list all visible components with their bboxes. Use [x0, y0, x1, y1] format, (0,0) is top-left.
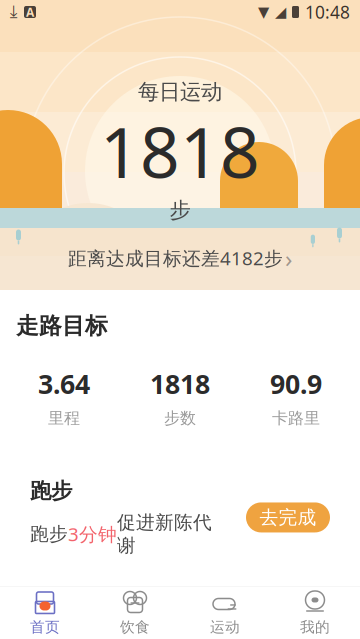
staticText: 90.9 [270, 366, 322, 401]
staticText: 跑步 [30, 523, 68, 545]
staticText: 1818 [100, 105, 260, 197]
staticText: 饮食 [120, 618, 150, 636]
staticText: 走路目标 [16, 312, 108, 340]
staticText: 跑步 [30, 478, 72, 504]
staticText: 我的 [300, 618, 330, 636]
staticText: 1818 [150, 366, 210, 401]
staticText: 步数 [164, 408, 196, 428]
staticText: 运动 [210, 618, 240, 636]
staticText: 去完成 [259, 506, 316, 529]
staticText: 10:48 [305, 0, 350, 23]
staticText: ▼ [258, 4, 269, 20]
button[interactable]: 距离达成目标还差4182步 [60, 236, 300, 280]
staticText: 距离达成目标还差4182步 [68, 246, 283, 270]
button[interactable]: 我的 [270, 582, 360, 639]
staticText: ⤓ [10, 3, 18, 20]
staticText: 里程 [48, 408, 80, 428]
button[interactable]: 首页 [0, 582, 90, 639]
staticText: › [285, 242, 292, 274]
staticText: 首页 [30, 618, 60, 636]
staticText: 促进新陈代谢 [117, 511, 212, 557]
staticText: 每日运动 [138, 79, 222, 105]
button[interactable]: 去完成 [246, 502, 330, 532]
button[interactable]: 运动 [180, 582, 270, 639]
staticText: 步 [169, 197, 190, 223]
staticText: 卡路里 [272, 408, 320, 428]
staticText: 3.64 [38, 366, 90, 401]
button[interactable]: 饮食 [90, 582, 180, 639]
staticText: 3分钟 [68, 522, 117, 546]
staticText: ◢ [275, 4, 286, 20]
staticText: A [26, 4, 34, 20]
